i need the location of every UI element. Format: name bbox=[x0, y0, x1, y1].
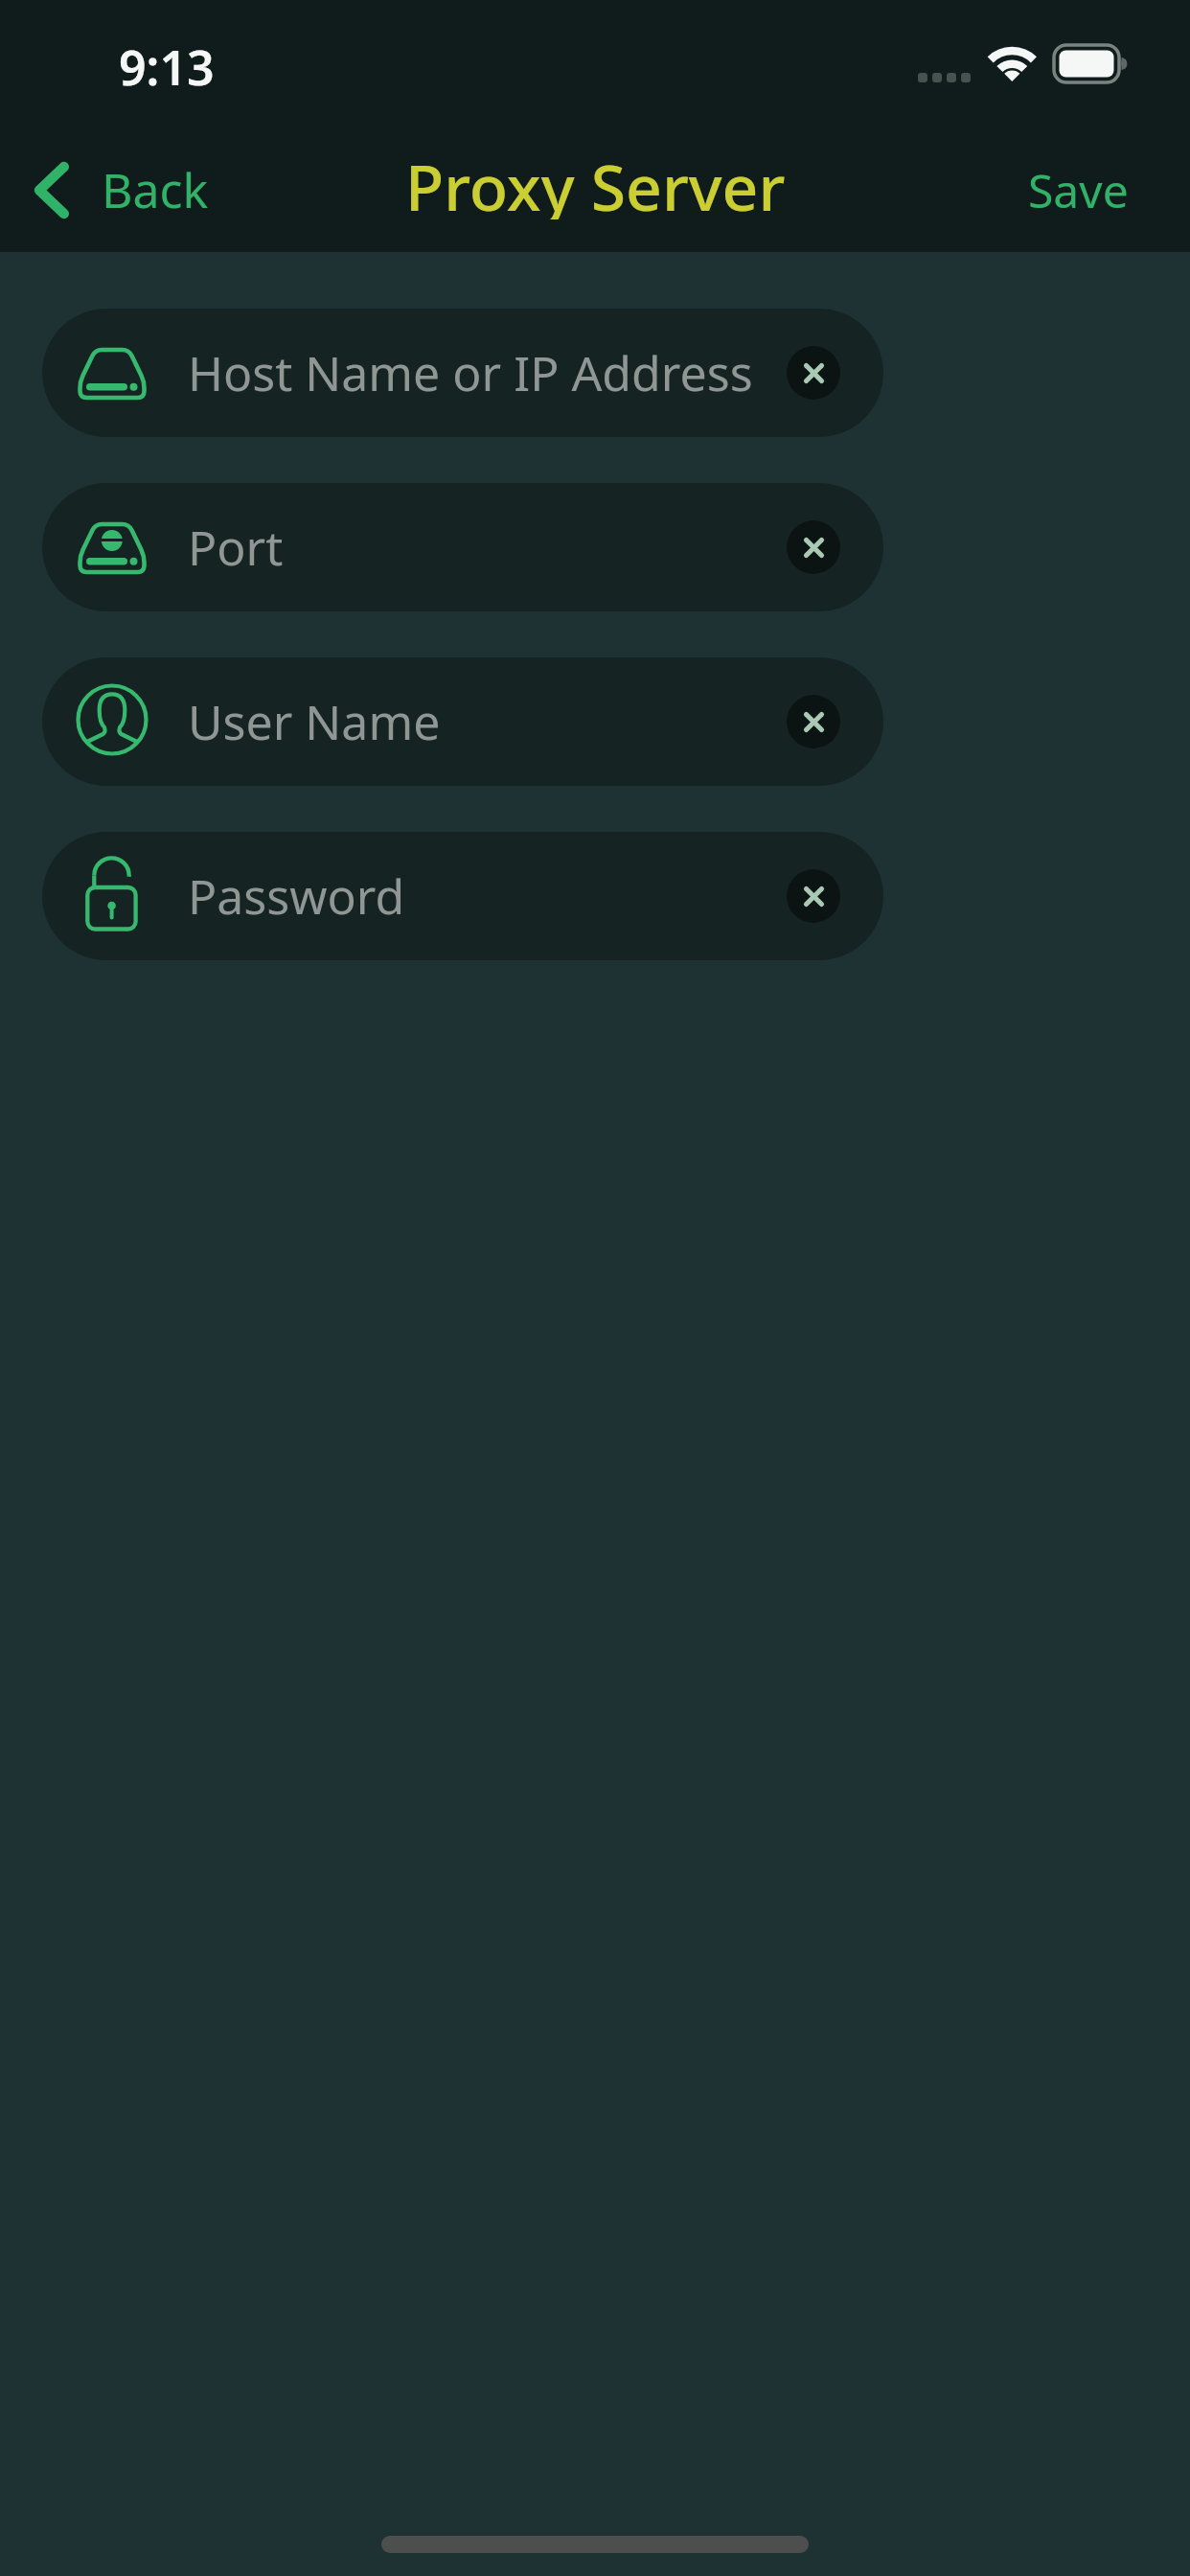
button[interactable]: Host Name or IP Address bbox=[42, 309, 883, 437]
staticText: Port bbox=[188, 515, 284, 580]
button[interactable] bbox=[787, 346, 840, 400]
staticText: Proxy Server bbox=[405, 143, 786, 219]
button[interactable]: Port bbox=[42, 483, 883, 611]
button[interactable] bbox=[787, 695, 840, 748]
staticText: Save bbox=[1028, 159, 1129, 221]
staticText: 9:13 bbox=[119, 34, 215, 88]
button[interactable]: User Name bbox=[42, 657, 883, 786]
staticText: User Name bbox=[188, 689, 441, 754]
staticText: Host Name or IP Address bbox=[188, 340, 753, 405]
button[interactable]: Password bbox=[42, 832, 883, 960]
button[interactable] bbox=[787, 520, 840, 574]
button[interactable] bbox=[787, 869, 840, 923]
button[interactable]: Save bbox=[956, 151, 1129, 228]
staticText: Password bbox=[188, 863, 405, 929]
button[interactable]: Back bbox=[29, 151, 220, 228]
staticText: Back bbox=[102, 157, 209, 222]
